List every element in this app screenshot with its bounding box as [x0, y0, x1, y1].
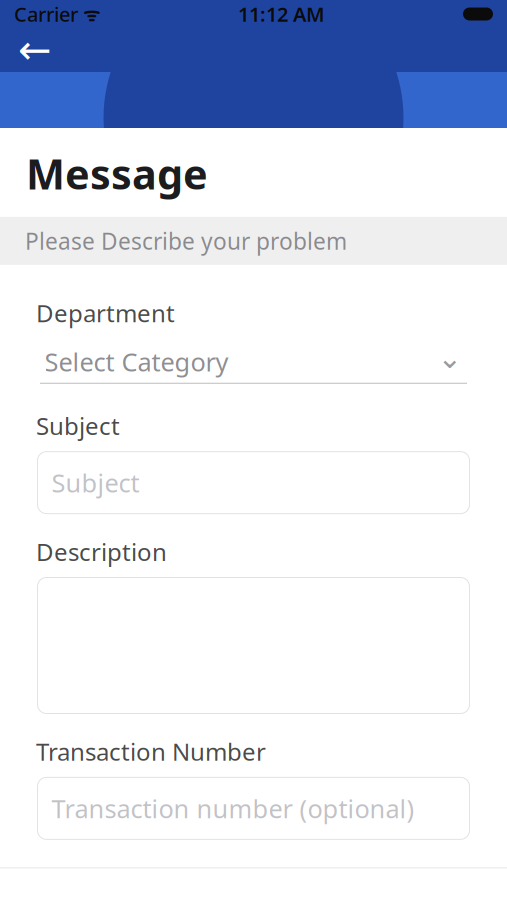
staticText: Message: [26, 146, 208, 201]
staticText: ⌄: [437, 341, 462, 374]
staticText: Please Describe your problem: [25, 226, 347, 256]
staticText: Transaction Number: [36, 735, 266, 767]
button[interactable]: Subject: [37, 452, 469, 514]
staticText: Subject: [36, 410, 120, 442]
staticText: Description: [36, 536, 167, 567]
staticText: Department: [36, 297, 175, 329]
staticText: Select Category: [44, 345, 228, 378]
staticText: ←: [18, 27, 52, 73]
staticText: 11:12 AM: [238, 1, 325, 27]
button[interactable]: Back: [8, 28, 62, 72]
button[interactable]: Transaction number (optional): [37, 777, 469, 839]
staticText: Subject: [51, 466, 139, 499]
button[interactable]: Select Category: [37, 341, 469, 384]
staticText: Transaction number (optional): [51, 792, 414, 825]
staticText: ᯤ: [78, 2, 100, 26]
staticText: Carrier: [14, 1, 78, 27]
